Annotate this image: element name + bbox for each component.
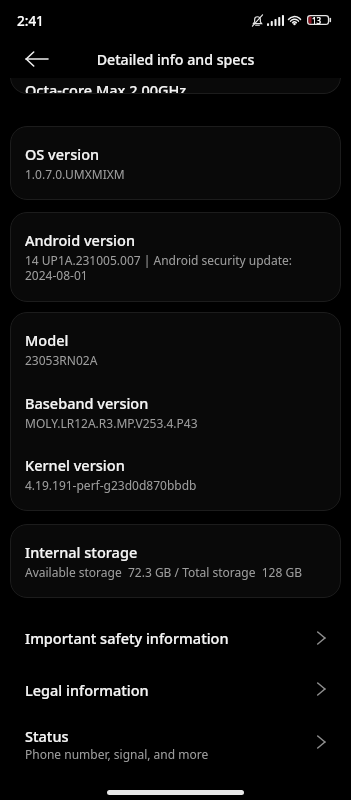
button[interactable]: Model (10, 312, 341, 511)
staticText: Android version (25, 230, 135, 250)
button[interactable]: Back (20, 42, 54, 76)
button[interactable]: Status (0, 718, 351, 774)
button[interactable]: Legal information (0, 666, 351, 718)
staticText: Legal information (25, 680, 149, 700)
button[interactable]: OS version (10, 126, 341, 200)
staticText: Kernel version (25, 455, 125, 475)
staticText: 14 UP1A.231005.007 | Android security up… (25, 252, 293, 284)
staticText: Detailed info and specs (0, 50, 351, 69)
staticText: Model (25, 330, 69, 350)
staticText: MOLY.LR12A.R3.MP.V253.4.P43 (25, 415, 198, 431)
staticText: 4.19.191-perf-g23d0d870bbdb (25, 477, 197, 493)
staticText: 23053RN02A (25, 352, 98, 368)
staticText: Status (25, 726, 69, 746)
staticText: Available storage 72.3 GB / Total storag… (25, 564, 302, 580)
staticText: Internal storage (25, 542, 138, 562)
button[interactable]: Important safety information (0, 614, 351, 666)
staticText: Important safety information (25, 628, 229, 648)
button[interactable]: Android version (10, 212, 341, 302)
staticText: 13 (312, 15, 322, 25)
staticText: 2:41 (17, 12, 44, 30)
staticText: Baseband version (25, 393, 149, 413)
button[interactable]: Internal storage (10, 524, 341, 598)
staticText: OS version (25, 144, 100, 164)
staticText: 1.0.7.0.UMXMIXM (25, 166, 125, 182)
button[interactable]: Octa-core Max 2.00GHz (10, 78, 341, 94)
staticText: Phone number, signal, and more (25, 746, 209, 762)
staticText: Octa-core Max 2.00GHz (25, 80, 187, 94)
